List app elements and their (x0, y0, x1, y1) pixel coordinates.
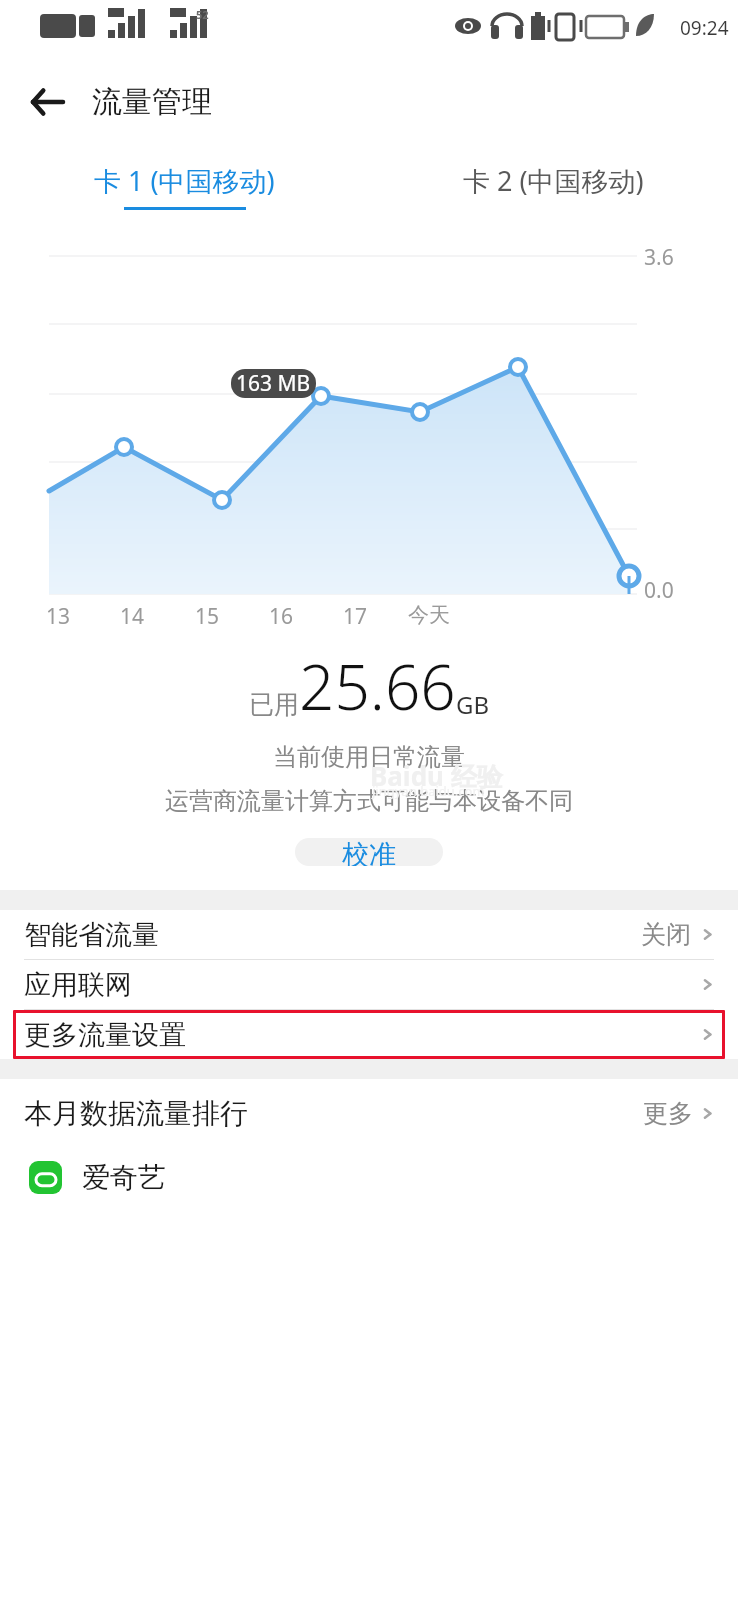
staticText: 14 (120, 602, 145, 631)
staticText: 本月数据流量排行 (24, 1096, 248, 1131)
button[interactable]: 爱奇艺 (29, 1147, 714, 1207)
staticText: 关闭 (641, 919, 691, 950)
button[interactable]: 本月数据流量排行 (24, 1079, 714, 1147)
staticText: 3.6 (644, 243, 674, 272)
button[interactable]: 智能省流量 (0, 910, 738, 960)
staticText: 163 MB (236, 369, 311, 398)
staticText: 15 (195, 602, 220, 631)
staticText: 运营商流量计算方式可能与本设备不同 (165, 786, 573, 816)
staticText: jingyan.baidu.com (372, 782, 485, 800)
staticText: Baidu 经验 (370, 758, 503, 794)
staticText: 17 (343, 602, 368, 631)
staticText: 卡 2 (中国移动) (463, 162, 644, 199)
staticText: 25.66 (299, 644, 456, 728)
staticText: 爱奇艺 (82, 1160, 166, 1195)
staticText: 更多流量设置 (24, 1018, 186, 1052)
staticText: 校准 (342, 838, 396, 866)
button[interactable]: 应用联网 (0, 960, 738, 1010)
staticText: 已用 (249, 689, 299, 720)
staticText: 应用联网 (24, 968, 132, 1002)
staticText: 0.0 (644, 576, 674, 605)
button[interactable]: 卡 2 (中国移动) (369, 148, 738, 224)
button[interactable]: 校准 (295, 838, 443, 866)
staticText: 16 (269, 602, 294, 631)
staticText: 52 (196, 7, 209, 22)
staticText: 卡 1 (中国移动) (94, 162, 275, 199)
staticText: 今天 (408, 602, 450, 628)
button[interactable]: 返回 (14, 70, 78, 134)
staticText: 更多 (643, 1098, 693, 1129)
staticText: 当前使用日常流量 (273, 742, 465, 772)
staticText: 09:24 (680, 15, 729, 41)
button[interactable]: 卡 1 (中国移动) (0, 148, 369, 224)
button[interactable]: 更多流量设置 (0, 1010, 738, 1059)
staticText: 13 (46, 602, 71, 631)
staticText: 智能省流量 (24, 918, 159, 952)
staticText: GB (456, 688, 490, 721)
staticText: 流量管理 (92, 83, 212, 121)
